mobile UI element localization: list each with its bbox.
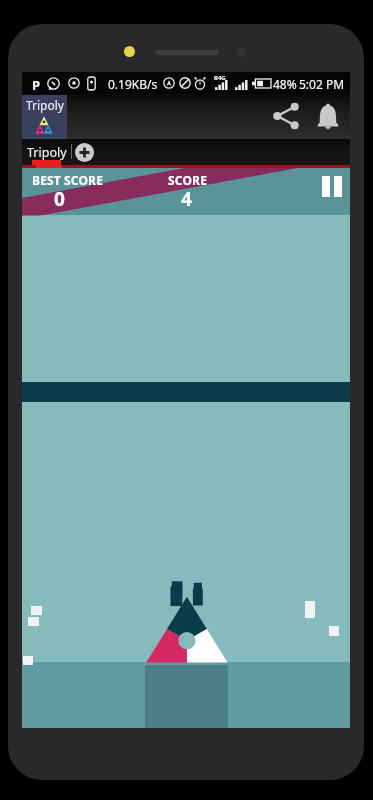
staticText: 4 [179, 186, 194, 212]
staticText: 48% [273, 76, 297, 92]
button[interactable]: Notifications [310, 98, 346, 134]
staticText: 0.19KB/s [108, 76, 158, 92]
button[interactable]: Pause [314, 168, 350, 204]
button[interactable]: Tripoly [27, 144, 67, 161]
button[interactable]: Share [268, 98, 304, 134]
button[interactable]: Tripoly [22, 95, 67, 139]
staticText: 5:02 PM [299, 76, 345, 92]
staticText: SCORE [159, 172, 216, 188]
staticText: BEST SCORE [32, 172, 104, 188]
staticText: R4G [214, 74, 226, 82]
staticText: Tripoly [26, 97, 64, 113]
staticText: P [32, 76, 41, 94]
staticText: 0 [52, 186, 67, 212]
button[interactable]: New tab [75, 143, 94, 162]
